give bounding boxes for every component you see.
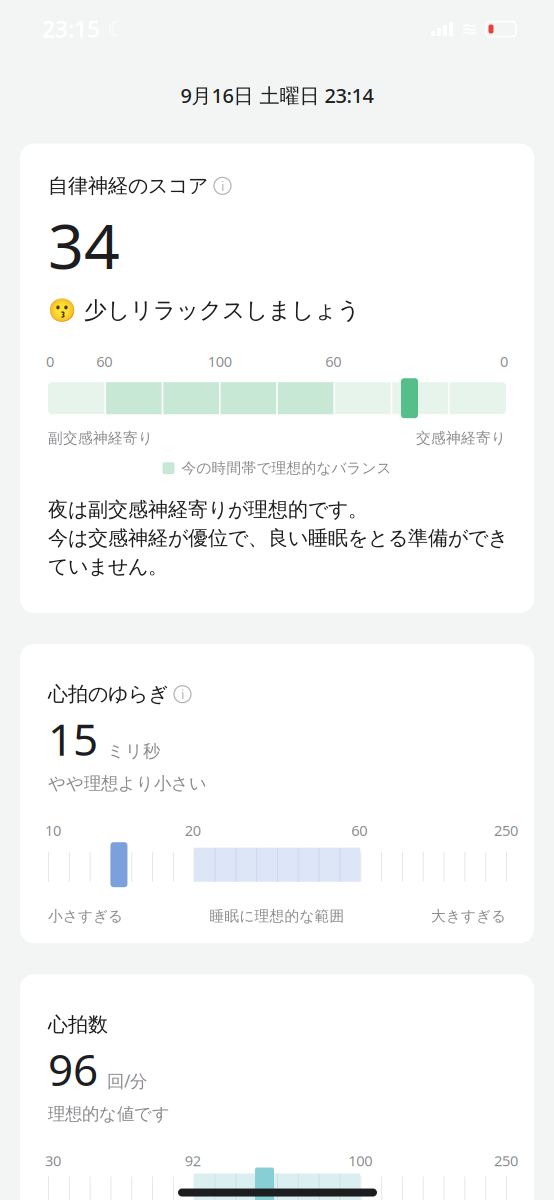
staticText: やや理想より小さい (48, 773, 207, 794)
staticText: 交感神経寄り (416, 429, 506, 447)
staticText: 100 (208, 351, 232, 371)
staticText: ≋ (461, 18, 478, 40)
staticText: 9月16日 土曜日 23:14 (180, 82, 373, 109)
staticText: 副交感神経寄り (48, 429, 153, 447)
staticText: 0 (500, 351, 508, 371)
staticText: 15 (48, 709, 98, 768)
staticText: 250 (494, 820, 518, 840)
staticText: i (181, 685, 184, 703)
staticText: 睡眠に理想的な範囲 (209, 907, 344, 925)
staticText: 60 (351, 820, 367, 840)
staticText: 10 (45, 820, 61, 840)
staticText: 0 (46, 351, 54, 371)
staticText: 92 (185, 1151, 201, 1170)
staticText: 100 (348, 1151, 372, 1170)
staticText: 今は交感神経が優位で、良い睡眠をとる準備ができ (48, 526, 508, 550)
staticText: 今の時間帯で理想的なバランス (181, 459, 391, 477)
staticText: ていません。 (48, 554, 168, 579)
staticText: 回/分 (107, 1069, 147, 1092)
staticText: 心拍数 (48, 1012, 108, 1037)
staticText: 夜は副交感神経寄りが理想的です。 (48, 497, 368, 522)
staticText: 60 (96, 351, 112, 371)
staticText: 23:15 (42, 14, 100, 44)
staticText: 30 (45, 1151, 61, 1170)
staticText: 大きすぎる (431, 907, 506, 925)
staticText: 34 (48, 203, 120, 286)
staticText: i (221, 177, 224, 195)
staticText: 心拍のゆらぎ (48, 682, 168, 706)
staticText: 自律神経のスコア (48, 174, 208, 198)
staticText: 96 (48, 1040, 98, 1098)
staticText: 20 (185, 820, 201, 840)
staticText: ミリ秒 (107, 741, 160, 762)
staticText: 理想的な値です (48, 1103, 170, 1124)
staticText: 250 (494, 1151, 518, 1170)
staticText: 少しリラックスしましょう (84, 296, 360, 324)
staticText: 小さすぎる (48, 907, 123, 925)
staticText: 60 (325, 351, 341, 371)
staticText: 😗 (48, 297, 76, 323)
